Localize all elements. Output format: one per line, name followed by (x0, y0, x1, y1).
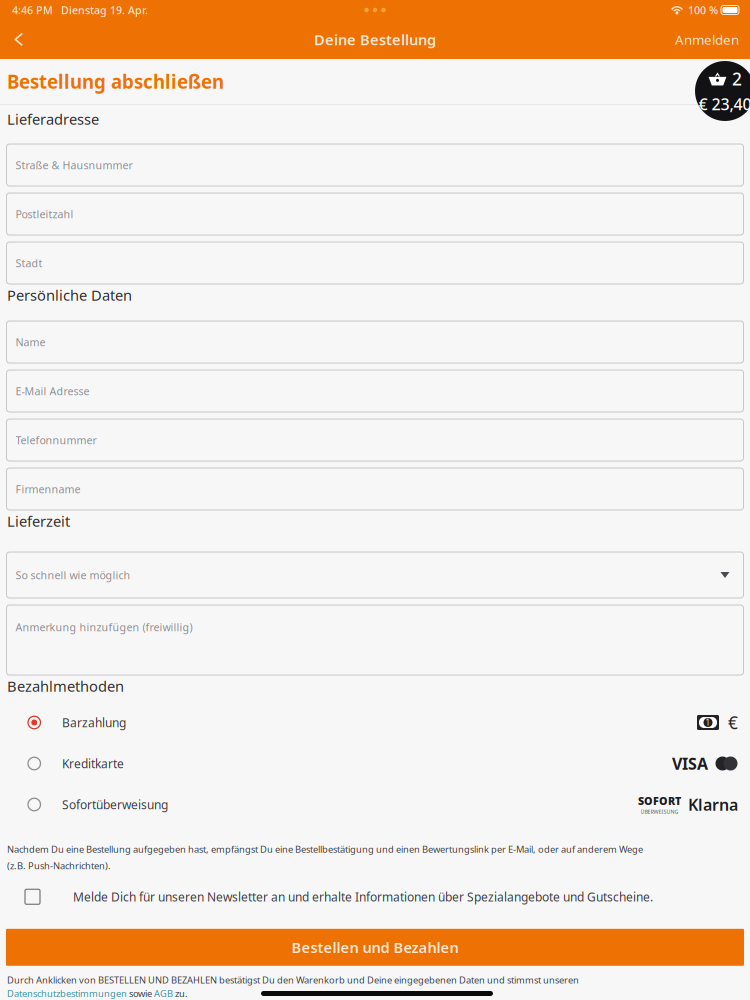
button[interactable]: Datenschutzbestimmungen (7, 987, 127, 1000)
staticText: sowie (127, 987, 154, 1000)
button[interactable]: Straße & Hausnummer (0, 144, 750, 186)
staticText: Sofortüberweisung (62, 796, 168, 812)
staticText: 2 (732, 67, 742, 90)
staticText: Persönliche Daten (7, 285, 132, 305)
staticText: Nachdem Du eine Bestellung aufgegeben ha… (7, 843, 643, 855)
staticText: Klarna (688, 794, 738, 815)
staticText: Lieferadresse (7, 109, 99, 129)
staticText: Kreditkarte (62, 755, 124, 771)
staticText: (z.B. Push-Nachrichten). (7, 859, 111, 872)
staticText: Anmelden (675, 31, 739, 48)
staticText: Firmenname (15, 482, 80, 496)
staticText: Bezahlmethoden (7, 676, 124, 696)
staticText: Lieferzeit (7, 511, 70, 531)
button[interactable]: AGB (154, 987, 173, 1000)
staticText: SOFORT (638, 794, 681, 808)
button[interactable]: Stadt (0, 242, 750, 284)
staticText: Deine Bestellung (314, 30, 436, 49)
button[interactable]: Postleitzahl (0, 193, 750, 235)
staticText: So schnell wie möglich (15, 568, 130, 582)
staticText: VISA (672, 753, 708, 774)
button[interactable]: Zurück (1, 20, 35, 59)
button[interactable]: Anmerkung hinzufügen (freiwillig) (0, 605, 750, 675)
button[interactable]: Barzahlung (0, 702, 750, 743)
staticText: Telefonnummer (15, 433, 96, 447)
staticText: zu. (173, 987, 188, 1000)
button[interactable]: Firmenname (0, 468, 750, 510)
staticText: Postleitzahl (15, 207, 73, 221)
staticText: Barzahlung (62, 714, 126, 730)
staticText: Bestellen und Bezahlen (291, 937, 458, 957)
staticText: 1 (705, 717, 710, 728)
staticText: Datenschutzbestimmungen (7, 987, 127, 1000)
button[interactable]: So schnell wie möglich (0, 552, 750, 598)
staticText: AGB (154, 987, 173, 1000)
button[interactable]: Sofortüberweisung (0, 784, 750, 825)
button[interactable]: Name (0, 321, 750, 363)
button[interactable]: Bestellen und Bezahlen (6, 929, 744, 966)
button[interactable]: Telefonnummer (0, 419, 750, 461)
staticText: Straße & Hausnummer (15, 158, 132, 172)
button[interactable]: Anmelden (669, 20, 745, 59)
button[interactable]: Kreditkarte (0, 743, 750, 784)
staticText: Bestellung abschließen (7, 69, 224, 94)
button[interactable]: E-Mail Adresse (0, 370, 750, 412)
staticText: Anmerkung hinzufügen (freiwillig) (15, 620, 192, 634)
staticText: Name (15, 335, 45, 349)
staticText: € 23,40 (698, 93, 750, 115)
button[interactable]: Warenkorb, 2 Artikel, 23,40 Euro (695, 61, 750, 121)
staticText: E-Mail Adresse (15, 384, 89, 398)
staticText: 4:46 PM (12, 3, 53, 17)
staticText: Melde Dich für unseren Newsletter an und… (73, 889, 653, 905)
staticText: Dienstag 19. Apr. (61, 3, 148, 17)
staticText: Durch Anklicken von BESTELLEN UND BEZAHL… (7, 974, 579, 986)
staticText: 100 % (688, 3, 718, 17)
button[interactable]: Melde Dich für unseren Newsletter an und… (0, 876, 750, 918)
staticText: Stadt (15, 256, 42, 270)
staticText: ÜBERWEISUNG (640, 808, 678, 815)
staticText: € (728, 711, 738, 734)
